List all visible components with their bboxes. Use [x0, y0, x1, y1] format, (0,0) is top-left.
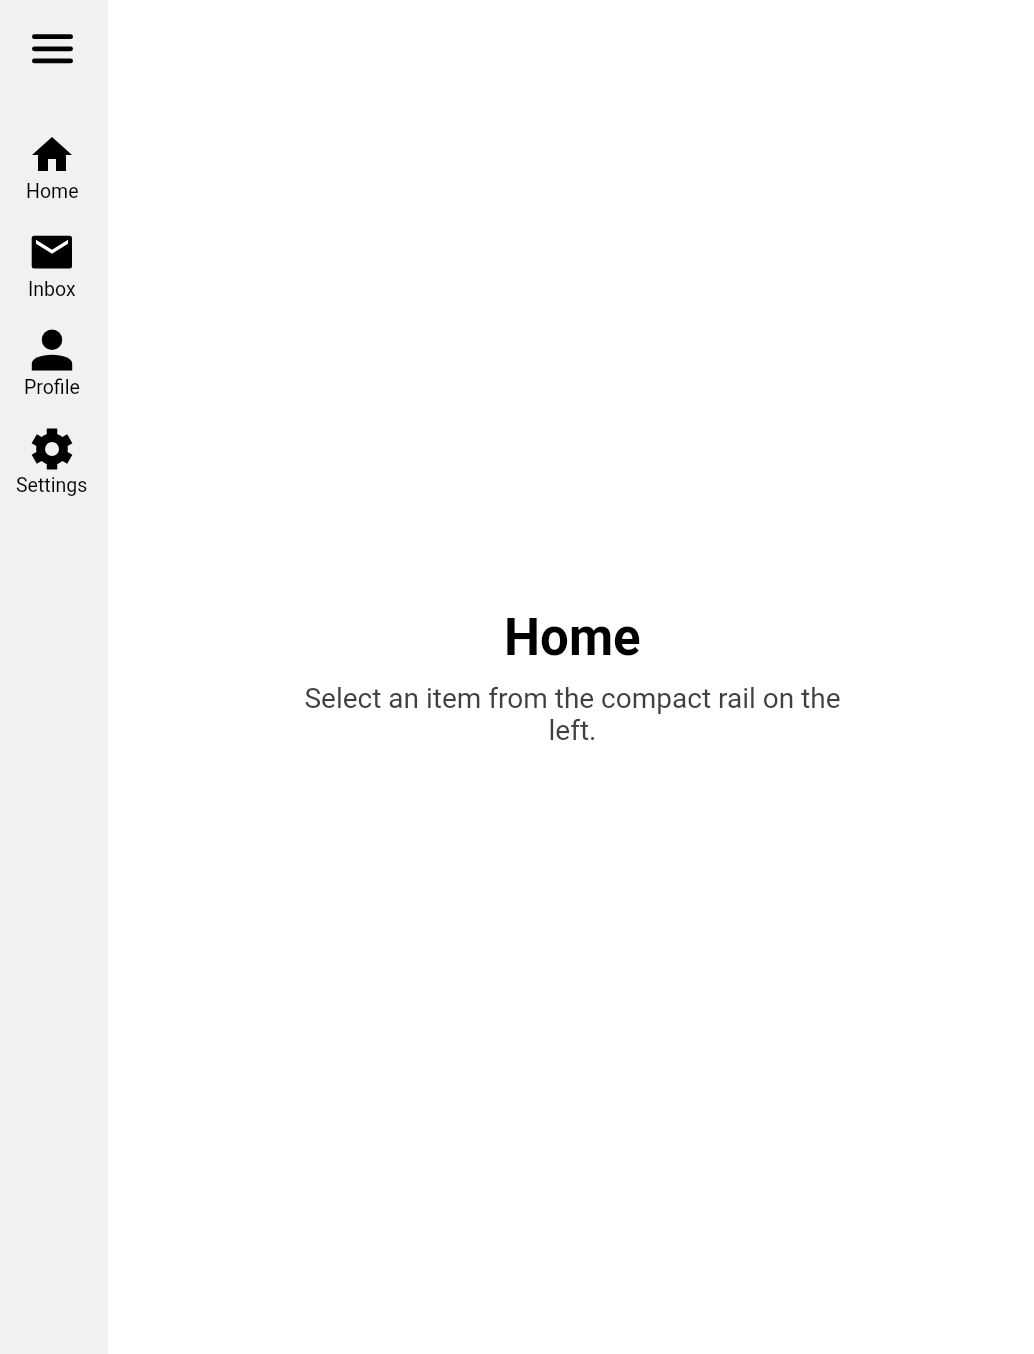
staticText: Home	[26, 180, 79, 203]
staticText: Select an item from the compact rail on …	[300, 682, 845, 747]
staticText: Inbox	[28, 278, 76, 301]
button[interactable]: Settings	[0, 425, 108, 523]
button[interactable]: Open navigation menu	[16, 13, 88, 85]
staticText: Settings	[16, 474, 88, 497]
button[interactable]: Profile	[0, 327, 108, 425]
staticText: Profile	[24, 376, 80, 399]
staticText: Home	[504, 608, 641, 668]
button[interactable]: Inbox	[0, 229, 108, 327]
button[interactable]: Home	[0, 131, 108, 229]
